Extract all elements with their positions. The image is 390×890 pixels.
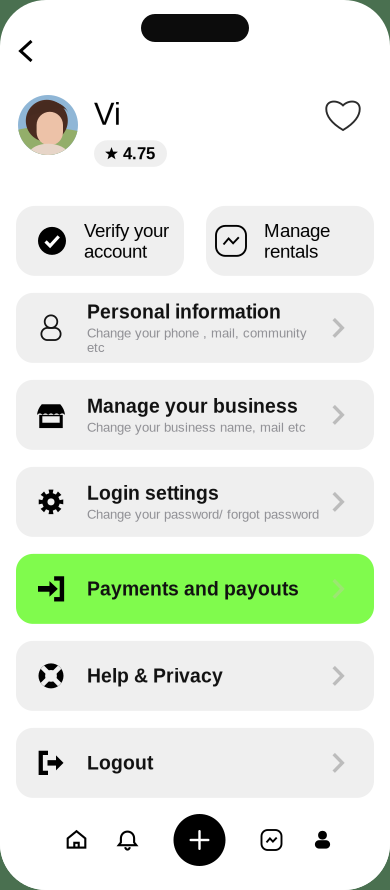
button[interactable]: Personal information [16,293,374,363]
staticText: 4.75 [123,144,155,163]
button[interactable]: Manage rentals [206,206,374,276]
button[interactable]: Verify your account [16,206,184,276]
staticText: Change your phone , mail, community etc [87,326,307,355]
staticText: Change your business name, mail etc [87,420,306,434]
button[interactable]: Logout [16,728,374,798]
button[interactable]: Profile [300,815,344,865]
staticText: Manage your business [87,395,298,417]
button[interactable]: Add [173,814,225,866]
staticText: Verify your account [84,220,169,262]
button[interactable]: Help & Privacy [16,641,374,711]
staticText: Login settings [87,482,219,504]
button[interactable]: Login settings [16,467,374,537]
button[interactable]: Notifications [105,815,149,865]
staticText: Logout [87,752,153,774]
staticText: Change your password/ forgot password [87,507,319,521]
staticText: Help & Privacy [87,665,223,687]
staticText: Manage rentals [264,220,330,262]
button[interactable]: Back [6,37,46,65]
staticText: Vi [94,97,121,131]
button[interactable]: Manage your business [16,380,374,450]
staticText: Payments and payouts [87,578,299,600]
staticText: Personal information [87,301,281,323]
button[interactable]: Payments and payouts [16,554,374,624]
button[interactable]: Activity [249,815,293,865]
button[interactable]: Home [54,815,98,865]
button[interactable]: Favourites [323,95,363,133]
